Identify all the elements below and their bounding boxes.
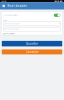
staticText: ¿Aprueba la solicitud? (3, 14, 18, 16)
button[interactable]: Cancelar (0, 49, 64, 54)
button[interactable]: Aprobar (53, 13, 61, 17)
staticText: Guardar (26, 42, 38, 45)
staticText: Cancelar (25, 50, 38, 54)
button[interactable]: Seleccione una opción (1, 21, 63, 26)
staticText: Seleccione una opción (4, 23, 20, 25)
button[interactable]: Guardar (0, 41, 64, 46)
button[interactable]: Ingrese el comentario (1, 27, 63, 31)
staticText: Motivo (3, 19, 7, 21)
button[interactable]: Menu (1, 3, 6, 8)
staticText: Final decisión (7, 4, 27, 8)
staticText: Ingrese el comentario (4, 28, 19, 30)
staticText: Observaciones (3, 33, 15, 35)
